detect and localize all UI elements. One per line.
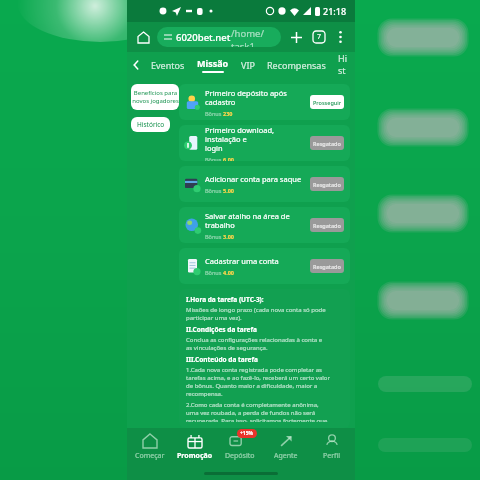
button[interactable]: Primeiro download, instalação e login: [179, 125, 350, 161]
button[interactable]: Resgatado: [310, 218, 344, 232]
staticText: Missões de longo prazo (cada nova conta …: [186, 306, 326, 322]
button[interactable]: 6020bet.net: [157, 27, 281, 47]
button[interactable]: Tabs: [310, 28, 328, 46]
staticText: II.Condições da tarefa: [186, 325, 257, 334]
staticText: Bônus: [205, 110, 223, 117]
staticText: Resgatado: [313, 222, 341, 229]
staticText: Perfil: [323, 451, 341, 461]
button[interactable]: Recompensas: [261, 52, 332, 78]
button[interactable]: Cadastrar uma conta: [179, 248, 350, 284]
button[interactable]: Eventos: [145, 52, 191, 78]
button[interactable]: Resgatado: [310, 177, 344, 191]
staticText: Cadastrar uma conta: [205, 256, 279, 266]
staticText: Prosseguir: [313, 99, 342, 106]
staticText: Bônus: [205, 187, 223, 194]
button[interactable]: Home: [134, 28, 152, 46]
staticText: Depósito: [225, 451, 255, 461]
staticText: I.Hora da tarefa (UTC-3):: [186, 295, 264, 304]
button[interactable]: Salvar atalho na área de trabalho: [179, 207, 350, 243]
staticText: Resgatado: [313, 181, 341, 188]
button[interactable]: Resgatado: [310, 259, 344, 273]
staticText: 6.00: [223, 156, 234, 161]
button[interactable]: Prosseguir: [310, 95, 344, 109]
staticText: III.Conteúdo da tarefa: [186, 355, 258, 364]
staticText: 6020bet.net: [176, 31, 231, 44]
staticText: Histórico: [137, 120, 165, 129]
staticText: Resgatado: [313, 263, 341, 270]
staticText: /home/task1: [231, 27, 274, 47]
staticText: 1.Cada nova conta registrada pode comple…: [186, 366, 330, 398]
staticText: 4.00: [223, 269, 234, 276]
button[interactable]: Primeiro depósito após cadastro: [179, 84, 350, 120]
staticText: Missão: [197, 57, 229, 69]
staticText: Promoção: [177, 451, 213, 461]
staticText: 5.00: [223, 187, 234, 194]
button[interactable]: Benefícios para novos jogadores: [131, 84, 179, 110]
staticText: VIP: [241, 59, 255, 71]
staticText: Começar: [135, 451, 165, 461]
button[interactable]: Adicionar conta para saque: [179, 166, 350, 202]
staticText: +15%: [240, 430, 254, 437]
staticText: 230: [223, 110, 233, 117]
button[interactable]: Missão: [191, 52, 235, 78]
staticText: Recompensas: [267, 59, 326, 71]
staticText: Histó: [338, 52, 349, 78]
staticText: Bônus: [205, 233, 223, 240]
staticText: Primeiro download, instalação e login: [205, 125, 306, 153]
button[interactable]: Agente: [263, 428, 309, 466]
staticText: Resgatado: [313, 140, 341, 147]
button[interactable]: VIP: [235, 52, 261, 78]
button[interactable]: Histórico: [131, 117, 170, 132]
staticText: Bônus: [205, 269, 223, 276]
button[interactable]: +15%: [217, 428, 263, 466]
button[interactable]: Back: [127, 52, 145, 78]
staticText: Agente: [274, 451, 298, 461]
button[interactable]: New tab: [287, 28, 305, 46]
button[interactable]: Perfil: [309, 428, 355, 466]
button[interactable]: Histó: [332, 52, 355, 78]
staticText: Eventos: [151, 59, 185, 71]
button[interactable]: Resgatado: [310, 136, 344, 150]
staticText: 3.00: [223, 233, 234, 240]
staticText: Conclua as configurações relacionadas à …: [186, 336, 323, 352]
button[interactable]: More options: [332, 29, 348, 45]
staticText: Bônus: [205, 156, 223, 161]
staticText: Salvar atalho na área de trabalho: [205, 211, 306, 230]
button[interactable]: Promoção: [172, 428, 217, 466]
staticText: Benefícios para novos jogadores: [132, 89, 179, 105]
staticText: Adicionar conta para saque: [205, 174, 302, 184]
staticText: Primeiro depósito após cadastro: [205, 88, 306, 107]
staticText: 21:18: [323, 5, 347, 17]
button[interactable]: Começar: [127, 428, 172, 466]
staticText: 7: [317, 32, 322, 42]
staticText: 2.Como cada conta é completamente anônim…: [186, 401, 328, 422]
